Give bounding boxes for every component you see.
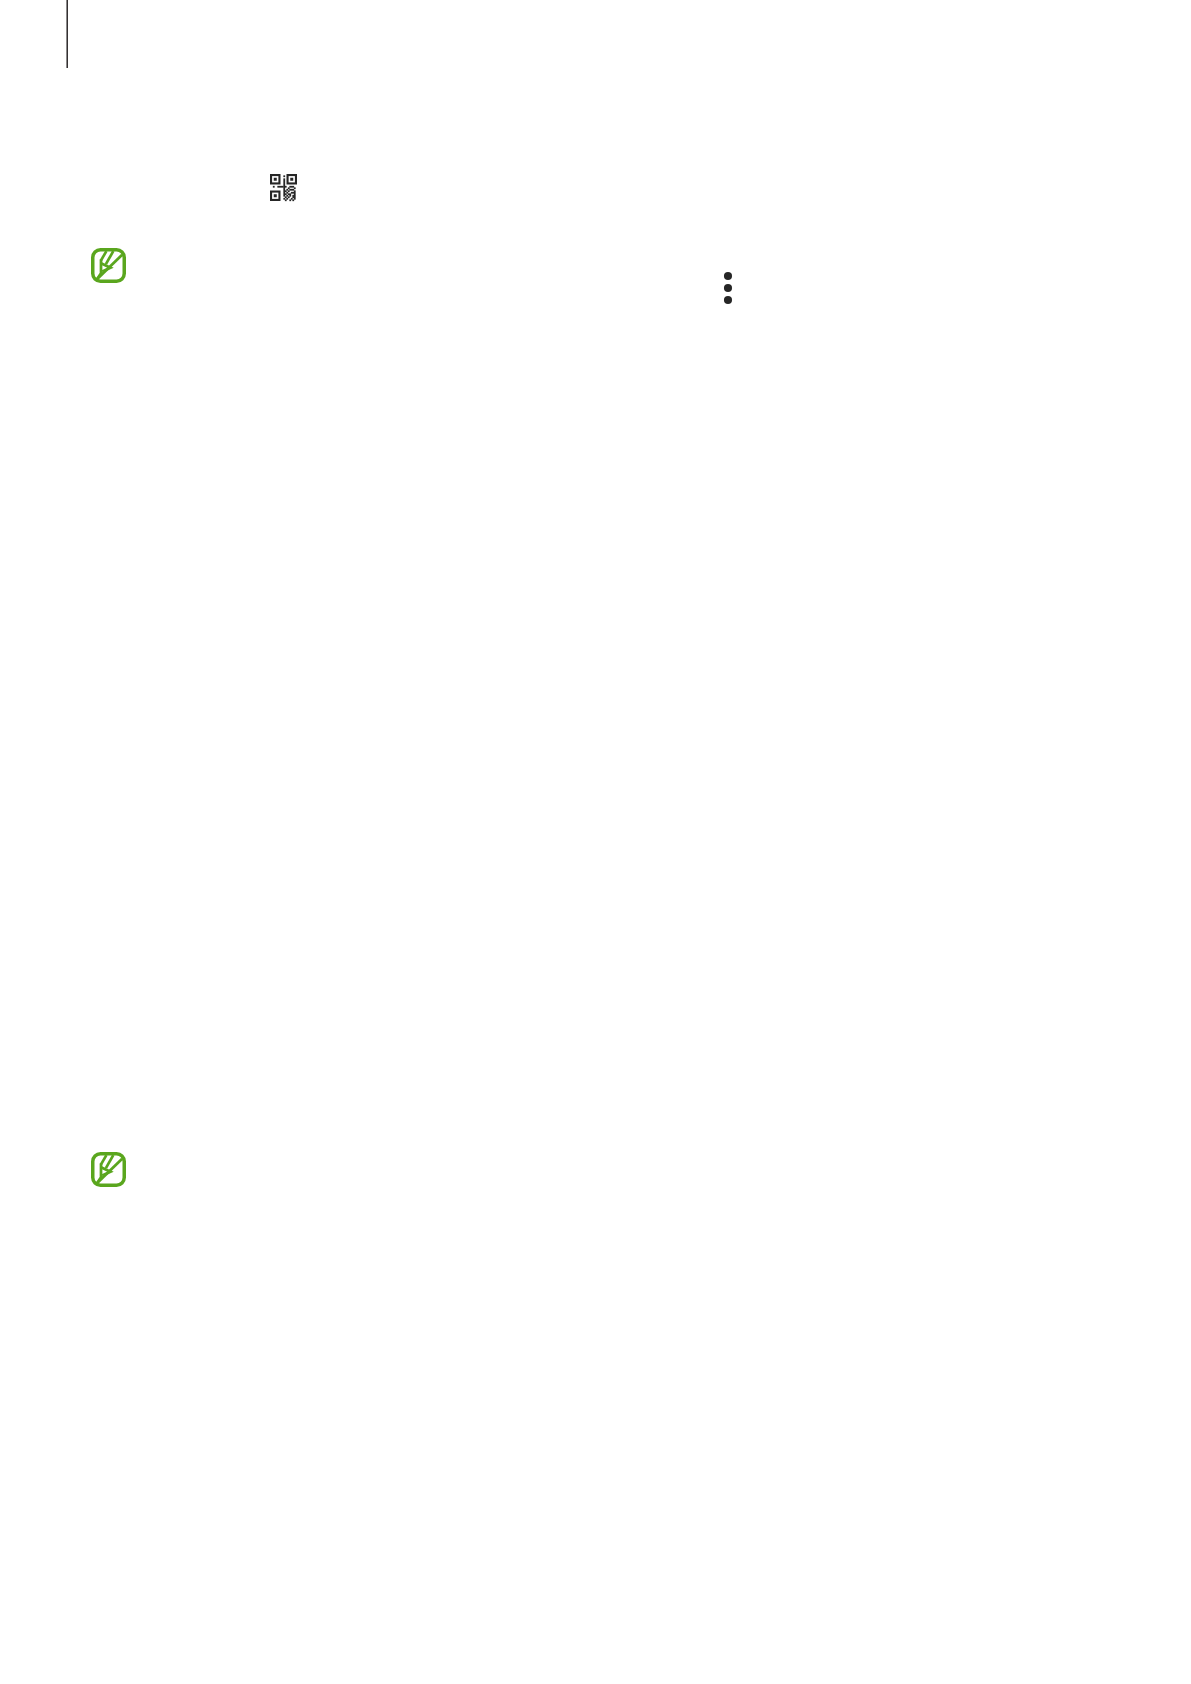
button[interactable]: Scan QR code — [270, 174, 297, 201]
button[interactable]: Samsung Notes — [91, 248, 126, 283]
button[interactable]: Samsung Notes — [91, 1152, 126, 1187]
button[interactable]: More options — [714, 262, 742, 314]
